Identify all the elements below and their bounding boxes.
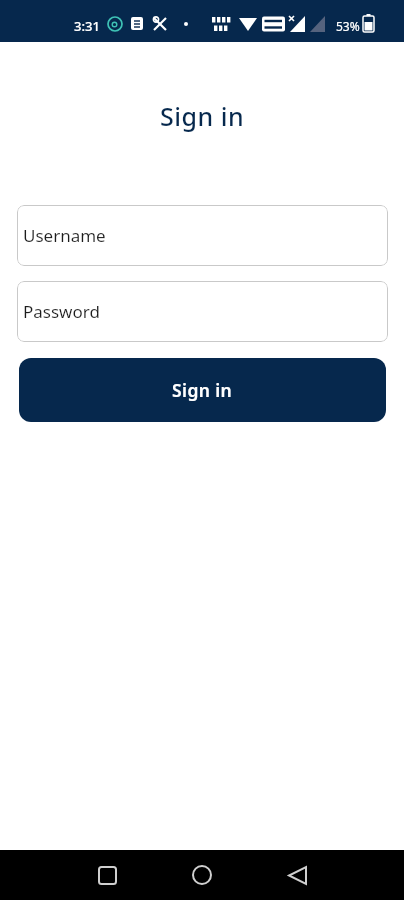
button[interactable]: [83, 851, 131, 899]
button[interactable]: [273, 851, 321, 899]
button[interactable]: [178, 851, 226, 899]
button[interactable]: Password: [17, 281, 388, 342]
button[interactable]: Sign in: [19, 358, 386, 422]
staticText: Sign in: [160, 99, 245, 133]
button[interactable]: Username: [17, 205, 388, 266]
staticText: 3:31: [74, 17, 100, 35]
staticText: Sign in: [172, 378, 233, 402]
staticText: Password: [23, 300, 100, 323]
staticText: Username: [23, 224, 106, 247]
staticText: 53%: [336, 18, 360, 34]
